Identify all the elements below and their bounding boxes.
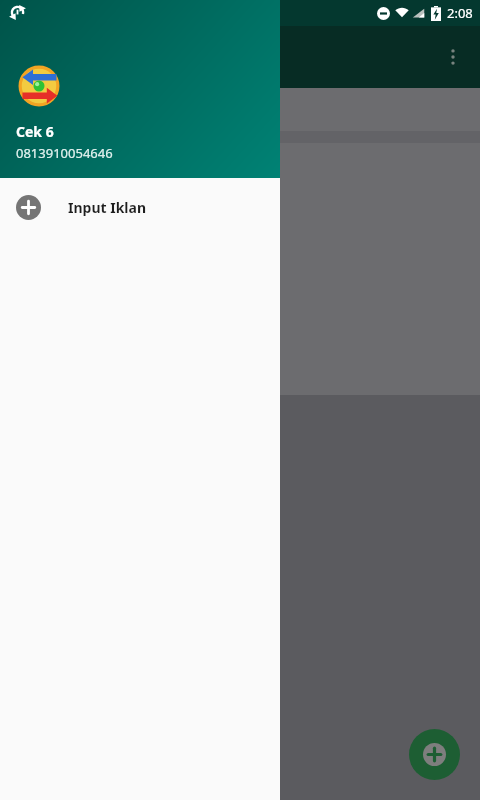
button[interactable]: More options bbox=[434, 38, 472, 76]
staticText: Cek 6 bbox=[16, 122, 54, 141]
staticText: hari lagi. Terima Kasih. bbox=[0, 101, 144, 119]
staticText: 0813910054646 bbox=[16, 144, 113, 162]
staticText: 2:08 bbox=[447, 4, 473, 22]
staticText: Input Iklan bbox=[68, 198, 146, 217]
button[interactable]: hari lagi. Terima Kasih. bbox=[0, 88, 480, 131]
button[interactable]: Add bbox=[409, 729, 460, 780]
staticText: L bbox=[118, 169, 127, 191]
button[interactable]: Cek 6 bbox=[0, 0, 280, 178]
button[interactable]: Input Iklan bbox=[0, 178, 280, 236]
button[interactable]: L bbox=[0, 143, 480, 395]
